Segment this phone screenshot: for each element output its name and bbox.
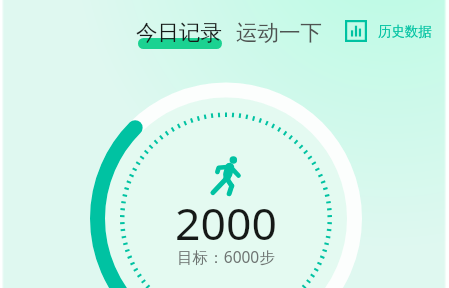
- button[interactable]: 运动一下: [231, 14, 327, 51]
- other: History chart: [345, 20, 367, 42]
- staticText: 运动一下: [236, 19, 322, 46]
- staticText: 历史数据: [378, 23, 432, 40]
- staticText: 今日记录: [136, 19, 222, 46]
- button[interactable]: History chart: [345, 20, 432, 42]
- button[interactable]: 今日记录: [131, 14, 227, 51]
- staticText: 目标：6000步: [126, 246, 326, 267]
- staticText: 2000: [126, 192, 326, 253]
